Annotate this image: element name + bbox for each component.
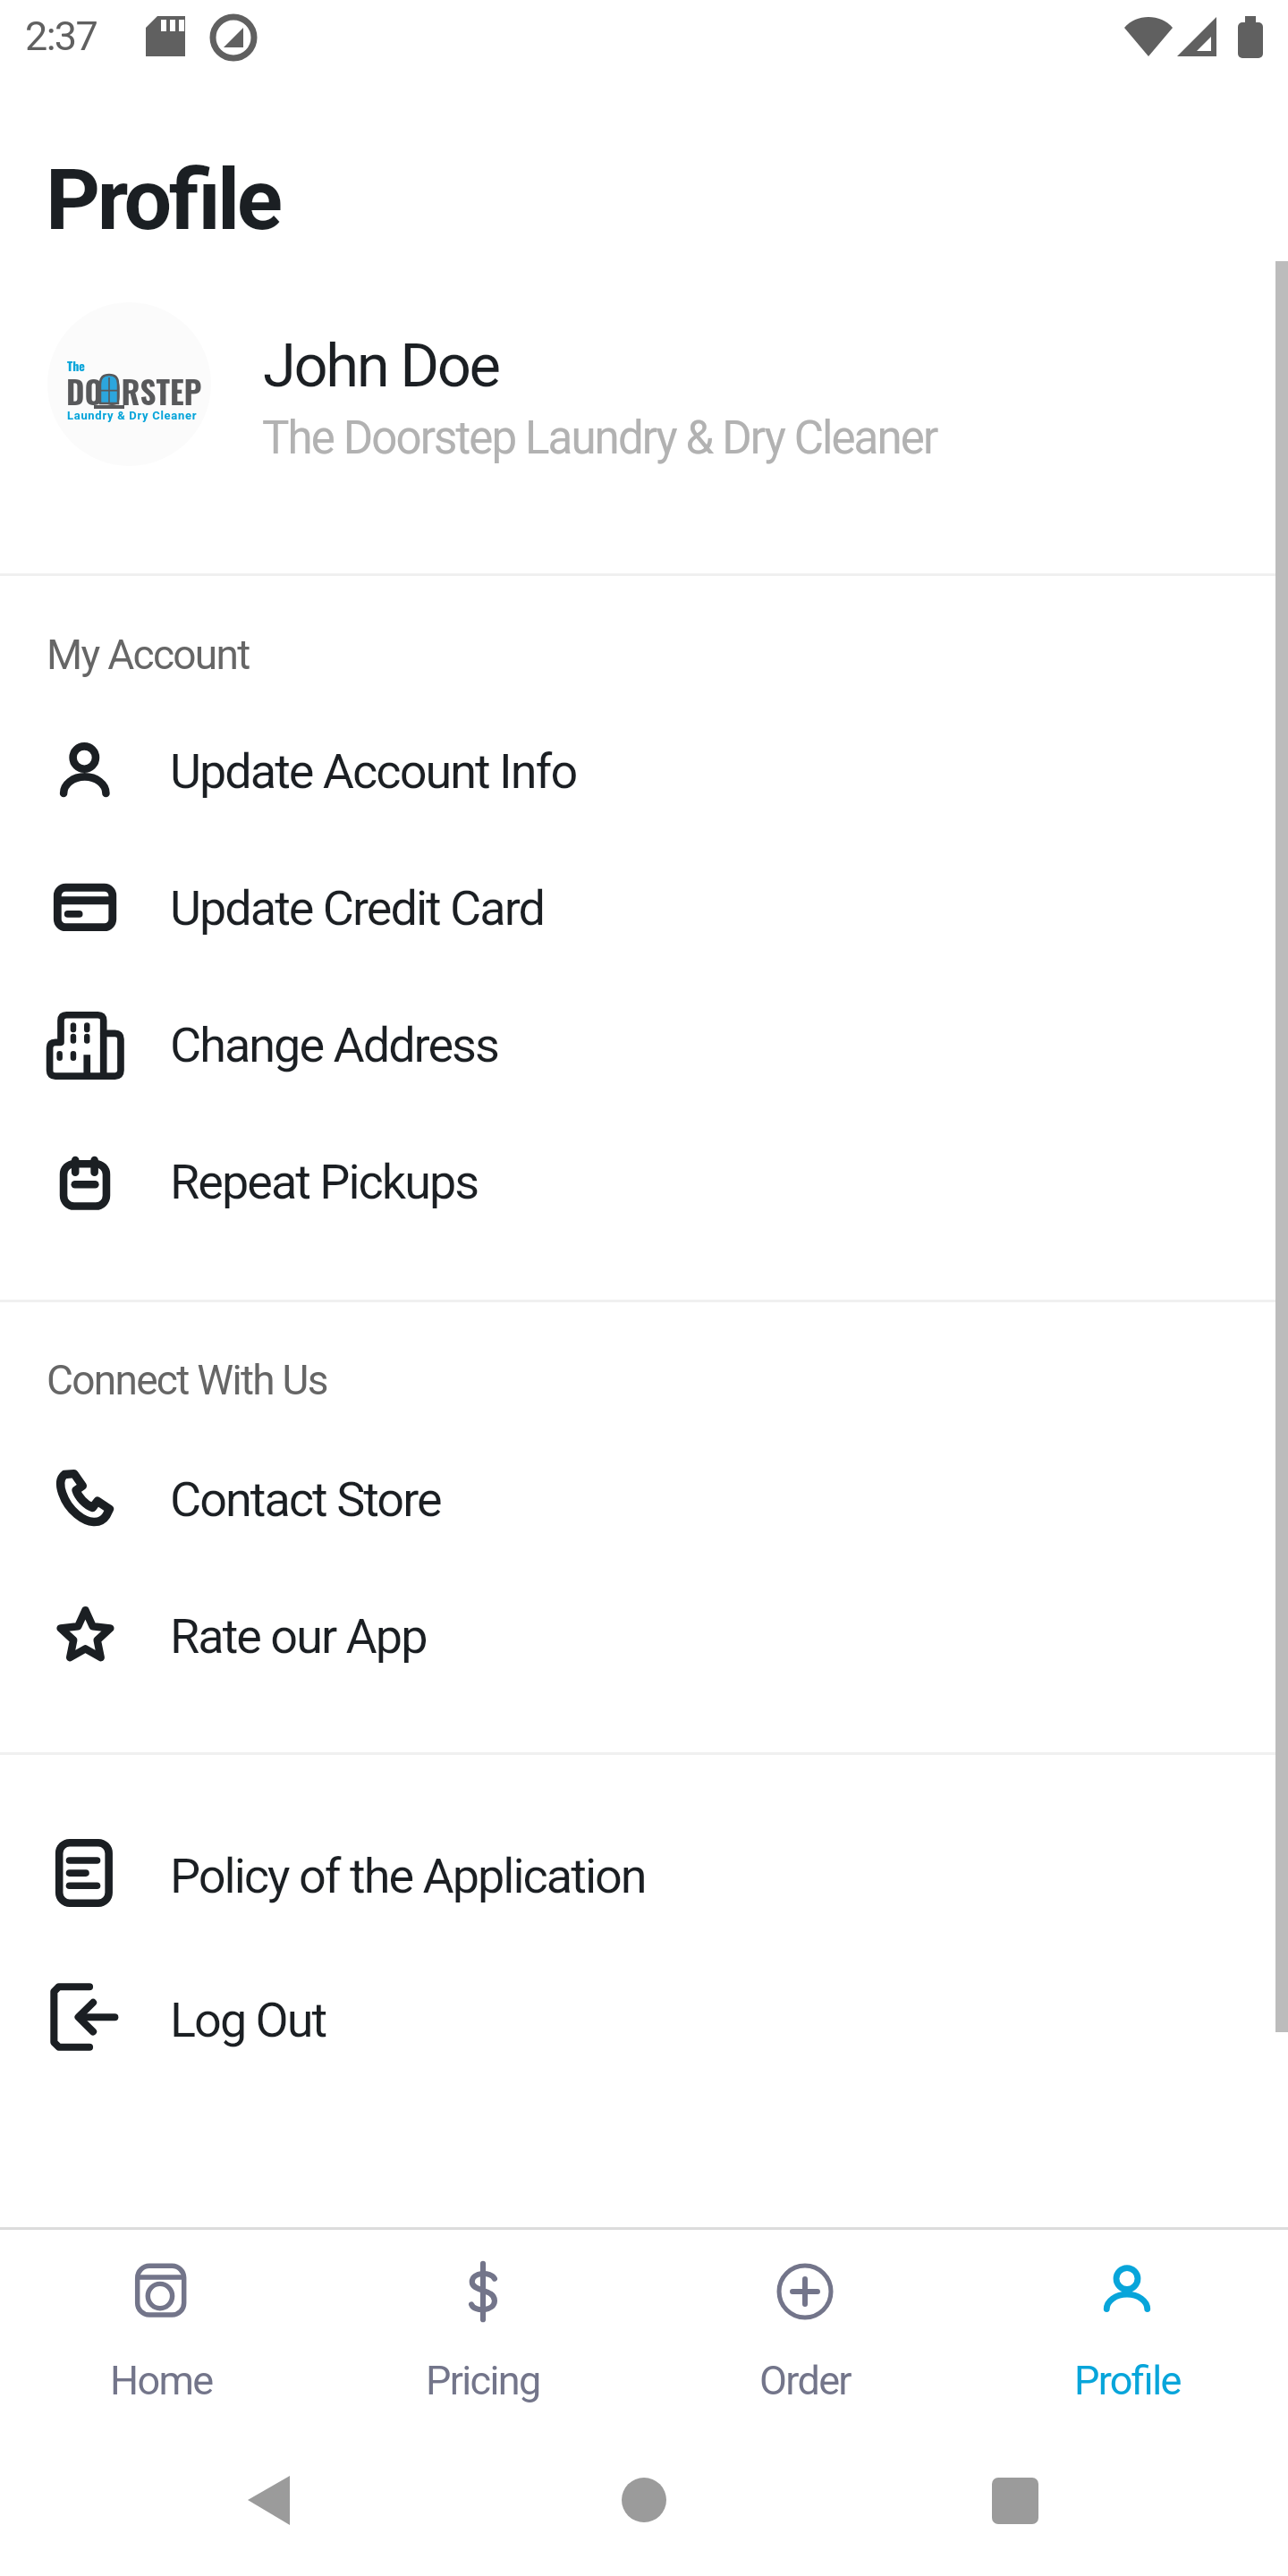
- staticText: Profile: [1074, 2357, 1181, 2404]
- button[interactable]: Order: [644, 2230, 966, 2415]
- button[interactable]: Profile: [966, 2230, 1288, 2415]
- button[interactable]: Update Credit Card: [0, 846, 1288, 970]
- staticText: DOORSTEP: [66, 368, 202, 414]
- staticText: Laundry & Dry Cleaner: [67, 409, 198, 422]
- staticText: Repeat Pickups: [170, 1154, 479, 1210]
- staticText: Contact Store: [170, 1471, 441, 1528]
- button[interactable]: The: [0, 261, 1288, 573]
- button[interactable]: Repeat Pickups: [0, 1120, 1288, 1243]
- staticText: Rate our App: [170, 1608, 427, 1665]
- other: System navigation bar: [0, 2415, 1288, 2576]
- button[interactable]: Rate our App: [0, 1574, 1288, 1698]
- staticText: Pricing: [426, 2357, 540, 2404]
- button[interactable]: Policy of the Application: [0, 1814, 1288, 1937]
- staticText: Policy of the Application: [170, 1848, 646, 1904]
- staticText: Home: [110, 2357, 213, 2404]
- button[interactable]: Home: [0, 2230, 322, 2415]
- staticText: The: [67, 356, 85, 375]
- staticText: Change Address: [170, 1017, 498, 1073]
- staticText: 2:37: [25, 13, 97, 60]
- staticText: The Doorstep Laundry & Dry Cleaner: [262, 411, 937, 465]
- button[interactable]: Update Account Info: [0, 709, 1288, 833]
- staticText: Connect With Us: [47, 1356, 327, 1404]
- button[interactable]: Contact Store: [0, 1437, 1288, 1561]
- staticText: Log Out: [170, 1992, 326, 2048]
- button[interactable]: Change Address: [0, 983, 1288, 1106]
- staticText: My Account: [47, 631, 250, 679]
- staticText: Update Account Info: [170, 743, 577, 800]
- button[interactable]: Log Out: [0, 1958, 1288, 2081]
- staticText: Update Credit Card: [170, 880, 544, 936]
- staticText: Profile: [46, 150, 280, 250]
- button[interactable]: Pricing: [322, 2230, 644, 2415]
- staticText: Order: [759, 2357, 851, 2404]
- staticText: John Doe: [263, 331, 499, 402]
